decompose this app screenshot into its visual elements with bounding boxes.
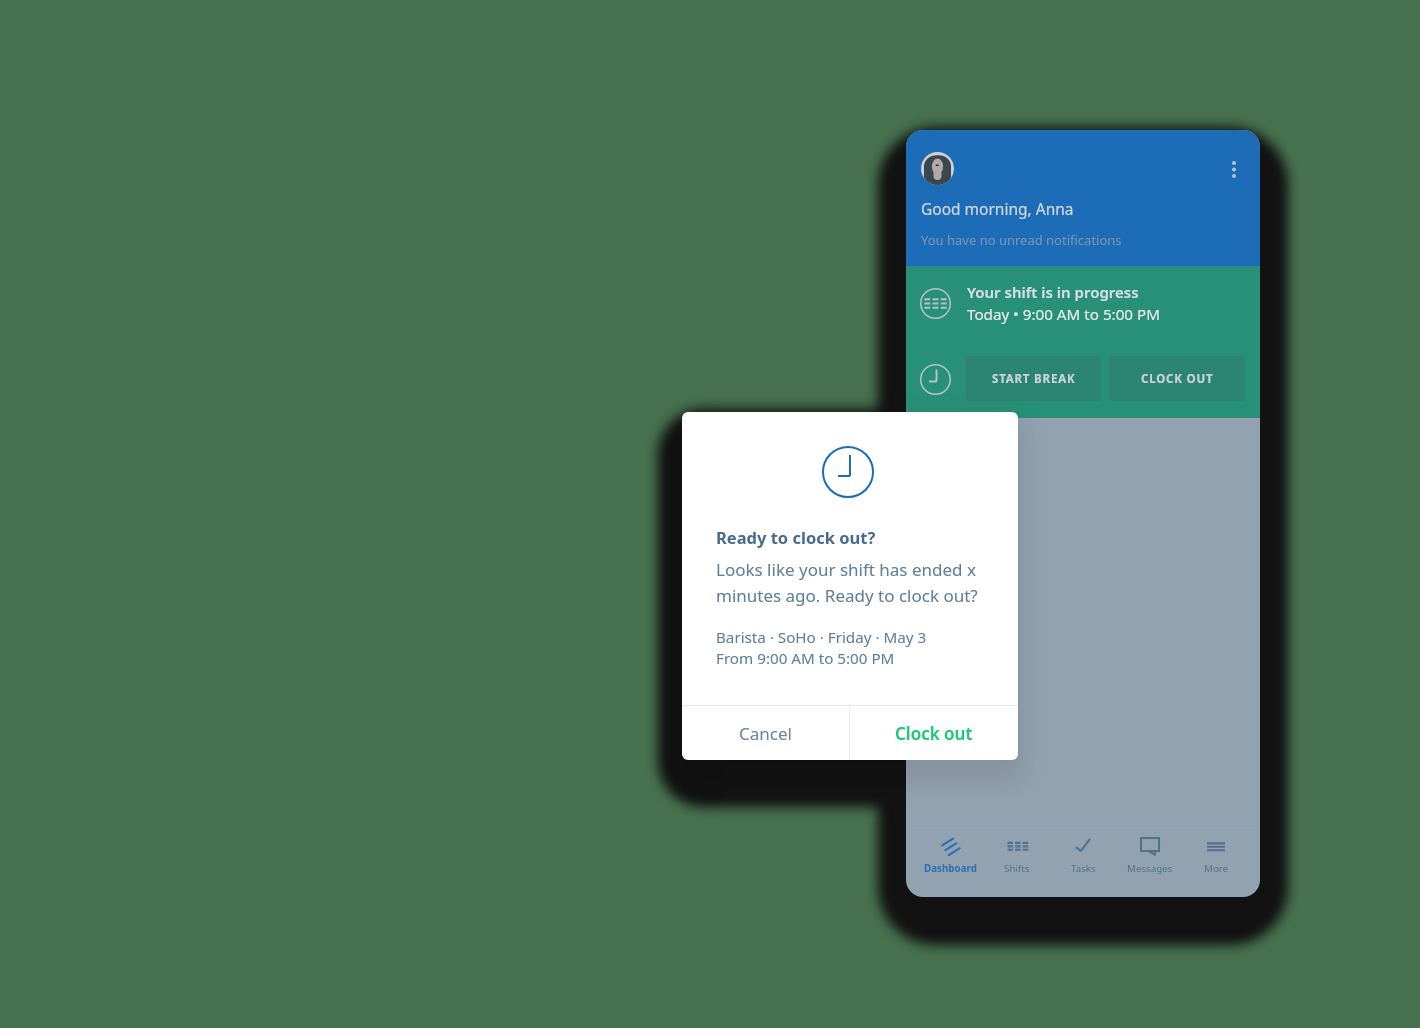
button[interactable]: More options (1222, 151, 1246, 189)
staticText: Good morning, Anna (921, 198, 1074, 219)
button[interactable]: CLOCK OUT (1109, 356, 1245, 401)
staticText: Shifts (1004, 862, 1030, 875)
button[interactable]: Cancel (682, 706, 849, 760)
staticText: Messages (1127, 862, 1173, 875)
button[interactable]: More (1183, 835, 1249, 897)
button[interactable]: Tasks (1050, 835, 1116, 897)
staticText: START BREAK (992, 371, 1076, 387)
staticText: Today • 9:00 AM to 5:00 PM (967, 304, 1160, 325)
staticText: You have no unread notifications (921, 231, 1122, 249)
staticText: More (1204, 862, 1229, 875)
staticText: Tasks (1071, 862, 1096, 875)
button[interactable]: Clock out (850, 706, 1018, 760)
staticText: Dashboard (924, 862, 977, 875)
button[interactable]: Messages (1117, 835, 1183, 897)
button[interactable]: Profile (921, 152, 954, 185)
button[interactable]: START BREAK (966, 356, 1101, 401)
staticText: Ready to clock out? (716, 526, 876, 548)
button[interactable]: Shifts (984, 835, 1050, 897)
staticText: Clock out (895, 722, 973, 745)
staticText: CLOCK OUT (1141, 371, 1214, 387)
staticText: Looks like your shift has ended x minute… (716, 558, 998, 607)
staticText: Barista · SoHo · Friday · May 3 From 9:0… (716, 627, 927, 669)
staticText: Your shift is in progress (967, 282, 1139, 302)
staticText: Cancel (739, 722, 792, 745)
button[interactable]: Dashboard (917, 835, 983, 897)
